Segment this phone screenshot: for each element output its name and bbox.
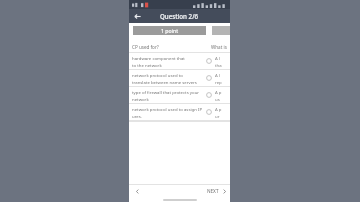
staticText: NEXT	[207, 188, 219, 194]
staticText: translate between name servers	[132, 79, 197, 85]
staticText: A p	[215, 89, 222, 95]
staticText: to the network	[132, 62, 162, 68]
staticText: A l	[215, 72, 220, 78]
staticText: type of firewall that protects your	[132, 89, 200, 95]
button[interactable]: network protocol used to	[129, 70, 230, 87]
staticText: network protocol used to assign IP	[132, 106, 203, 112]
button[interactable]: type of firewall that protects your	[129, 87, 230, 104]
staticText: Question 2/6	[160, 12, 199, 20]
staticText: A p	[215, 106, 222, 112]
button[interactable]: hardware component that connects	[129, 53, 230, 70]
button[interactable]: Back	[131, 10, 143, 22]
button[interactable]: 1 point	[133, 26, 206, 35]
staticText: us	[215, 96, 220, 102]
staticText: network protocol used to	[132, 72, 183, 78]
staticText: rep	[215, 79, 222, 85]
staticText: network	[132, 96, 149, 102]
staticText: ur	[215, 113, 220, 119]
staticText: hardware component that connects	[132, 55, 204, 61]
staticText: ures.	[132, 113, 142, 119]
staticText: 1 point	[161, 27, 179, 34]
staticText: A l	[215, 55, 220, 61]
staticText: tha	[215, 62, 222, 68]
button[interactable]: network protocol used to assign IP	[129, 104, 230, 121]
staticText: CP used for?	[132, 44, 159, 50]
staticText: What is	[211, 44, 227, 50]
button[interactable]: Previous	[132, 186, 142, 196]
button[interactable]: NEXT	[207, 186, 227, 196]
